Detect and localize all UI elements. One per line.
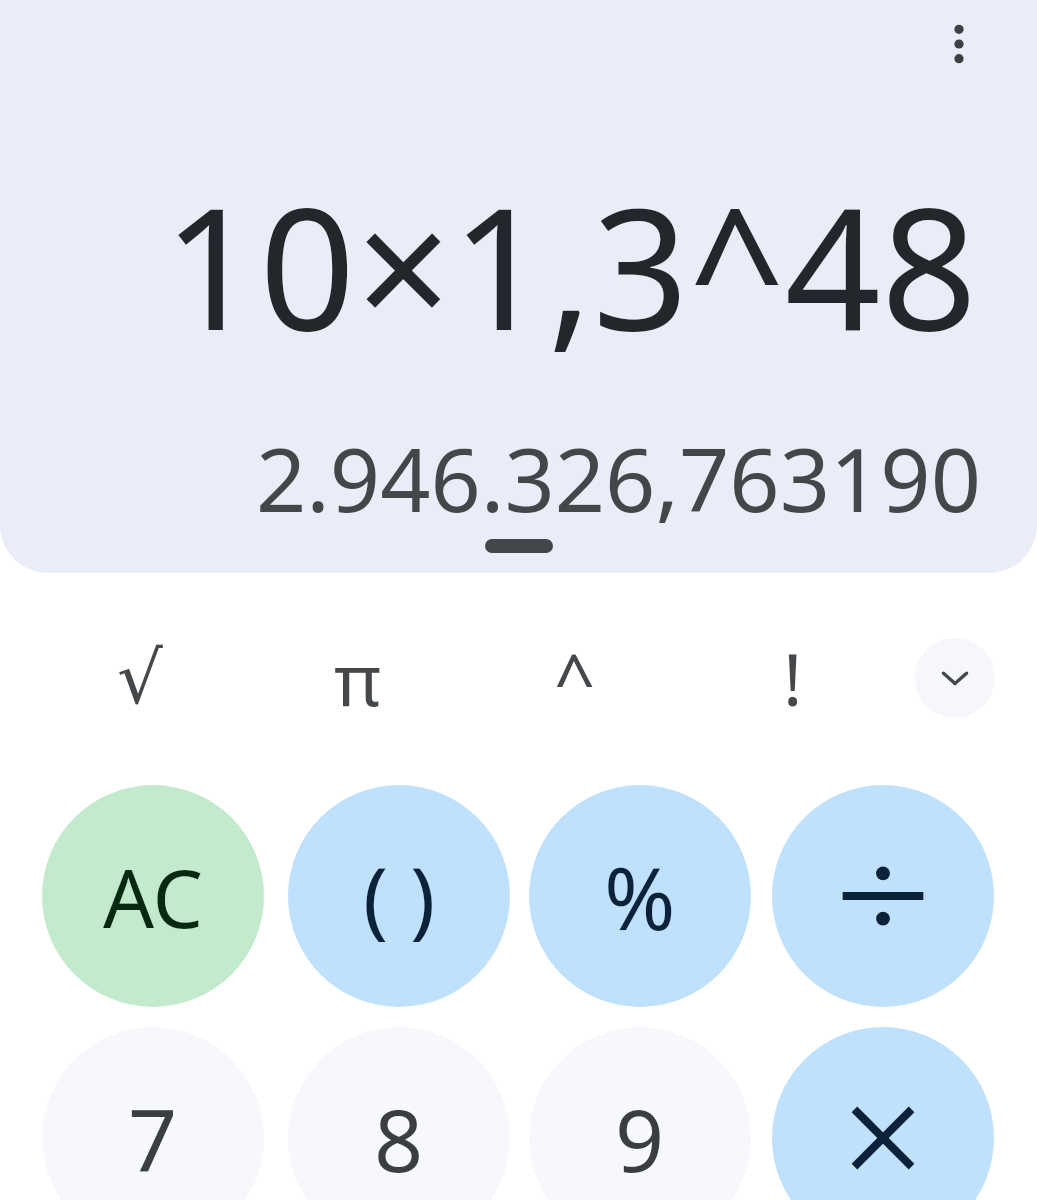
staticText: √ <box>117 636 163 720</box>
button[interactable]: 9 <box>529 1027 751 1200</box>
staticText: AC <box>103 842 204 951</box>
button[interactable]: ! <box>739 624 847 732</box>
staticText: 7 <box>128 1080 178 1197</box>
button[interactable]: 8 <box>288 1027 510 1200</box>
button[interactable]: 7 <box>42 1027 264 1200</box>
button[interactable]: More options <box>915 0 1003 88</box>
staticText: 2.946.326,763190 <box>255 418 981 538</box>
button[interactable]: Percent <box>529 785 751 1007</box>
button[interactable]: ^ <box>521 624 629 732</box>
button[interactable]: √ <box>86 624 194 732</box>
button[interactable]: Divide <box>772 785 994 1007</box>
staticText: 9 <box>615 1080 665 1197</box>
button[interactable]: Show more functions <box>915 638 995 718</box>
button[interactable]: π <box>304 624 412 732</box>
staticText: 8 <box>374 1080 424 1197</box>
button[interactable]: Parentheses <box>288 785 510 1007</box>
staticText: ( ) <box>363 839 436 953</box>
staticText: % <box>604 838 676 955</box>
button[interactable]: AC <box>42 785 264 1007</box>
staticText: 10×1,3^48 <box>163 150 977 379</box>
button[interactable]: Expand display <box>485 539 553 553</box>
button[interactable]: Multiply <box>772 1027 994 1200</box>
staticText: ! <box>783 629 803 727</box>
staticText: ^ <box>554 629 596 727</box>
staticText: π <box>334 629 382 727</box>
